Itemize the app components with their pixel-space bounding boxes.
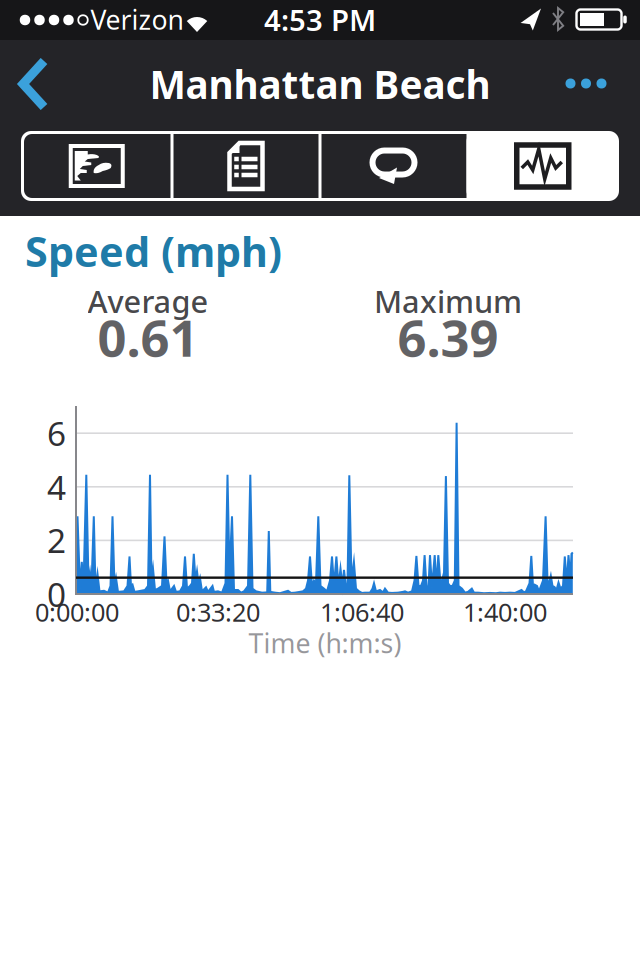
button[interactable]: Back bbox=[3, 40, 63, 128]
button[interactable]: Map bbox=[23, 131, 171, 201]
staticText: 0.61 bbox=[97, 303, 198, 371]
staticText: Maximum bbox=[374, 281, 522, 321]
staticText: Manhattan Beach bbox=[149, 58, 490, 110]
staticText: 0 bbox=[47, 572, 66, 616]
button[interactable]: Graphs bbox=[470, 131, 616, 201]
staticText: 2 bbox=[47, 518, 66, 562]
button[interactable]: Details bbox=[172, 131, 320, 201]
staticText: 4 bbox=[47, 465, 66, 509]
staticText: Verizon bbox=[90, 2, 183, 37]
staticText: 6.39 bbox=[397, 303, 498, 371]
staticText: 1:40:00 bbox=[463, 595, 547, 629]
staticText: 0:00:00 bbox=[35, 595, 119, 629]
staticText: 0:33:20 bbox=[176, 595, 260, 629]
staticText: Time (h:m:s) bbox=[248, 625, 401, 661]
staticText: Average bbox=[87, 281, 208, 321]
button[interactable]: Laps bbox=[320, 131, 468, 201]
button[interactable]: More bbox=[550, 40, 621, 128]
staticText: Speed (mph) bbox=[25, 224, 282, 278]
staticText: 4:53 PM bbox=[264, 0, 376, 39]
staticText: 6 bbox=[47, 411, 66, 455]
staticText: 1:06:40 bbox=[320, 595, 404, 629]
